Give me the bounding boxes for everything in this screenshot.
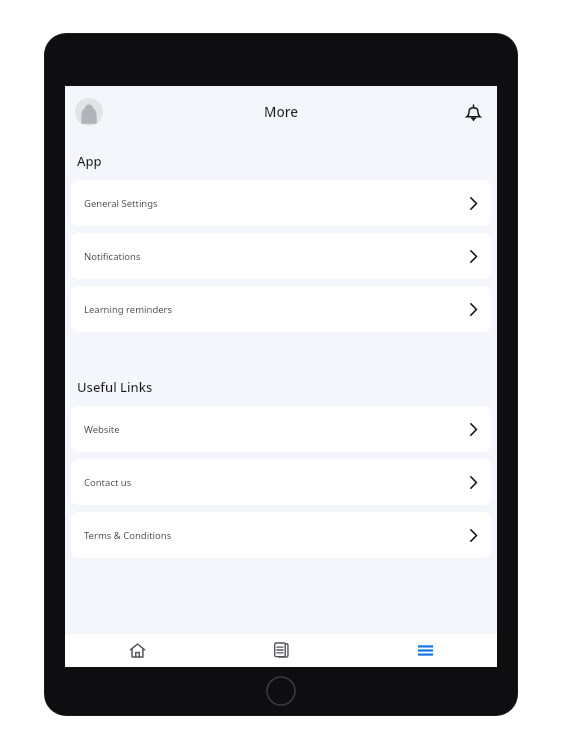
button[interactable]: Terms & Conditions	[71, 512, 491, 558]
staticText: App	[77, 152, 102, 170]
button[interactable]: Notifications	[459, 98, 487, 126]
button[interactable]: General Settings	[71, 180, 491, 226]
button[interactable]: Website	[71, 406, 491, 452]
staticText: Contact us	[84, 476, 132, 489]
button[interactable]: Learning reminders	[71, 286, 491, 332]
button[interactable]: Profile	[75, 98, 103, 126]
button[interactable]: More	[353, 634, 497, 667]
staticText: General Settings	[84, 197, 158, 210]
staticText: Notifications	[84, 250, 141, 263]
staticText: Terms & Conditions	[84, 529, 172, 542]
button[interactable]: Notifications	[71, 233, 491, 279]
staticText: Useful Links	[77, 378, 153, 396]
staticText: Learning reminders	[84, 303, 173, 316]
button[interactable]: Courses	[209, 634, 353, 667]
staticText: Website	[84, 423, 120, 436]
button[interactable]: Home	[65, 634, 209, 667]
button[interactable]: Contact us	[71, 459, 491, 505]
staticText: More	[264, 103, 298, 121]
